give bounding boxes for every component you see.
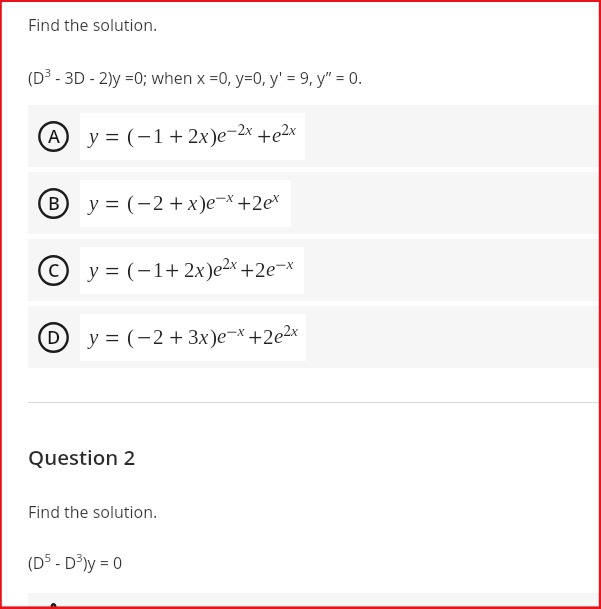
staticText: A [48, 124, 60, 149]
staticText: = [105, 261, 120, 281]
staticText: = [105, 194, 120, 214]
staticText: + [169, 127, 184, 147]
staticText: e2x [274, 322, 298, 348]
button[interactable]: Answer option A [28, 593, 601, 609]
staticText: e−x [206, 188, 234, 214]
staticText: e2x [272, 121, 296, 147]
staticText: − [137, 261, 152, 281]
staticText: Find the solution. [28, 501, 158, 523]
staticText: y [89, 191, 99, 214]
staticText: 3 [188, 325, 199, 348]
staticText: 2 [252, 191, 263, 214]
staticText: 2 [153, 191, 164, 214]
button[interactable]: Answer option B [28, 172, 601, 234]
staticText: + [169, 194, 184, 214]
staticText: 2 [184, 258, 195, 281]
staticText: − [137, 194, 152, 214]
staticText: C [48, 258, 60, 283]
staticText: ) [206, 258, 213, 281]
staticText: ( [127, 325, 134, 348]
staticText: 1 [153, 124, 164, 147]
staticText: e−2x [217, 121, 253, 147]
staticText: e2x [213, 255, 237, 281]
staticText: ) [210, 325, 217, 348]
staticText: (D3 - 3D - 2)y =0; when x =0, y=0, y' = … [28, 65, 363, 88]
button[interactable]: Answer option A [28, 105, 601, 167]
staticText: ) [199, 191, 206, 214]
staticText: B [48, 191, 60, 216]
staticText: 2 [188, 124, 199, 147]
staticText: 2 [263, 325, 274, 348]
staticText: y [89, 124, 99, 147]
staticText: y [89, 258, 99, 281]
staticText: ex [263, 188, 280, 214]
staticText: − [137, 328, 152, 348]
staticText: + [240, 261, 255, 281]
staticText: + [165, 261, 180, 281]
staticText: x [195, 258, 205, 281]
staticText: (D5 - D3)y = 0 [28, 550, 123, 573]
staticText: x [199, 124, 209, 147]
staticText: D [47, 325, 61, 350]
staticText: 2 [153, 325, 164, 348]
staticText: y [89, 325, 99, 348]
staticText: + [169, 328, 184, 348]
staticText: + [257, 127, 272, 147]
staticText: + [237, 194, 252, 214]
staticText: = [105, 328, 120, 348]
staticText: = [105, 127, 120, 147]
staticText: − [137, 127, 152, 147]
staticText: e−x [217, 322, 245, 348]
staticText: x [188, 191, 198, 214]
staticText: ( [127, 191, 134, 214]
staticText: ) [210, 124, 217, 147]
staticText: ( [127, 258, 134, 281]
staticText: Question 2 [28, 443, 136, 471]
staticText: ( [127, 124, 134, 147]
button[interactable]: Answer option D [28, 306, 601, 368]
staticText: Find the solution. [28, 14, 158, 36]
button[interactable]: Answer option C [28, 239, 601, 301]
staticText: + [248, 328, 263, 348]
staticText: e−x [266, 255, 294, 281]
staticText: x [199, 325, 209, 348]
staticText: 1 [153, 258, 164, 281]
staticText: 2 [255, 258, 266, 281]
